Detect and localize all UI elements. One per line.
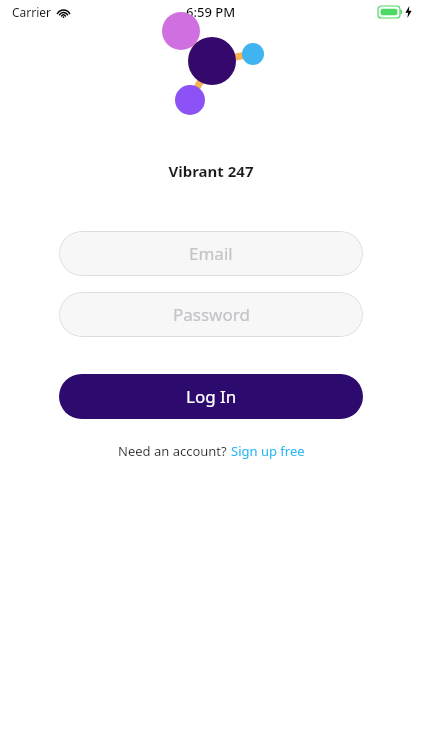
button[interactable]: Log In <box>59 374 363 419</box>
button[interactable]: Email <box>59 231 363 276</box>
staticText: 6:59 PM <box>186 3 236 21</box>
staticText: Need an account? <box>118 442 231 460</box>
staticText: Sign up free <box>231 442 305 460</box>
button[interactable]: Password <box>59 292 363 337</box>
staticText: Carrier <box>12 4 52 20</box>
staticText: Vibrant 247 <box>168 161 254 181</box>
staticText: Email <box>189 242 233 265</box>
button[interactable]: Sign up free <box>231 442 305 460</box>
staticText: Log In <box>186 385 237 408</box>
staticText: Password <box>173 303 250 326</box>
